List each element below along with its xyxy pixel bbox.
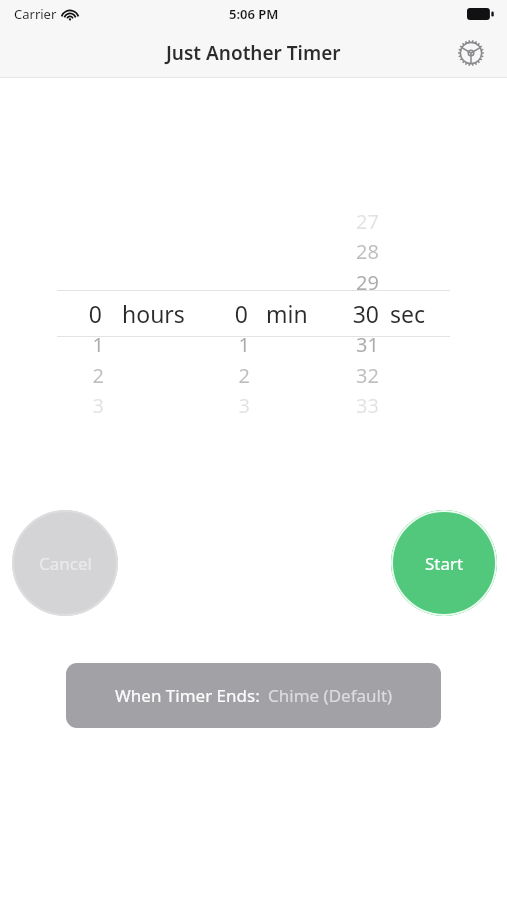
button[interactable]: Cancel <box>12 510 118 616</box>
button[interactable]: When Timer Ends: <box>66 663 441 728</box>
staticText: 33 <box>343 392 379 419</box>
staticText: Cancel <box>39 552 92 575</box>
staticText: Just Another Timer <box>166 40 341 66</box>
staticText: 31 <box>343 331 379 358</box>
staticText: 29 <box>343 269 379 296</box>
staticText: sec <box>390 298 426 329</box>
staticText: 0 <box>76 298 102 329</box>
staticText: 3 <box>80 392 104 419</box>
staticText: hours <box>122 298 185 329</box>
staticText: Chime (Default) <box>268 684 393 707</box>
staticText: 2 <box>80 362 104 389</box>
staticText: 30 <box>340 298 379 329</box>
staticText: When Timer Ends: <box>115 684 260 707</box>
staticText: 28 <box>343 238 379 265</box>
staticText: Carrier <box>14 5 57 23</box>
staticText: 27 <box>343 208 379 235</box>
button[interactable]: 0 <box>0 291 507 336</box>
staticText: 2 <box>226 362 250 389</box>
staticText: min <box>266 298 308 329</box>
staticText: 32 <box>343 362 379 389</box>
staticText: 1 <box>226 331 250 358</box>
staticText: 3 <box>226 392 250 419</box>
staticText: 0 <box>222 298 248 329</box>
staticText: 1 <box>80 331 104 358</box>
staticText: 5:06 PM <box>229 5 279 23</box>
button[interactable]: Start <box>391 510 497 616</box>
button[interactable]: Settings <box>454 36 488 70</box>
staticText: Start <box>425 552 464 575</box>
